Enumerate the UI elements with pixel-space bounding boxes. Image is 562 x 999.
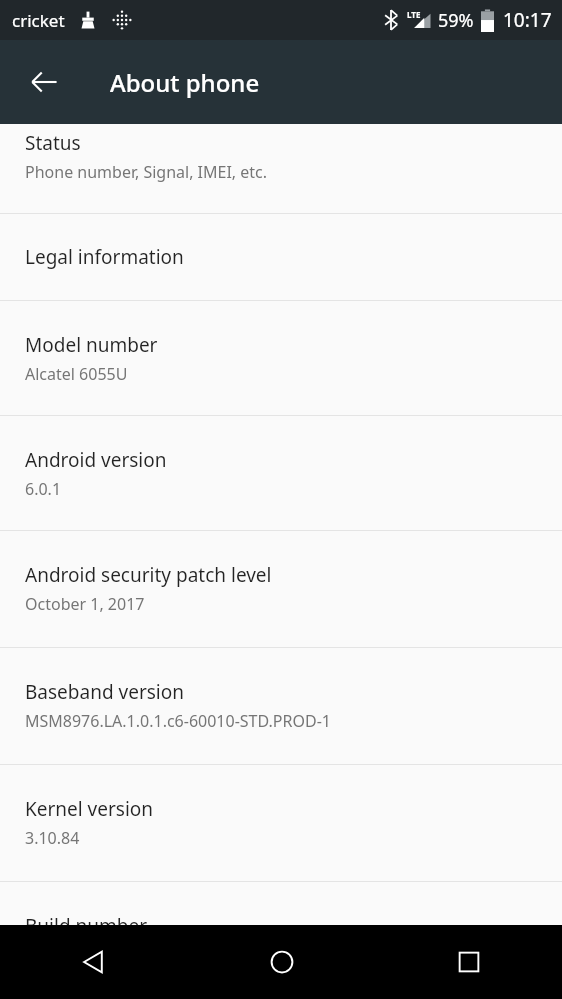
- button[interactable]: Home: [188, 925, 375, 999]
- button[interactable]: Kernel version: [0, 765, 562, 881]
- staticText: LTE: [407, 9, 421, 20]
- button[interactable]: Baseband version: [0, 648, 562, 764]
- button[interactable]: Recent apps: [375, 925, 562, 999]
- staticText: Android security patch level: [25, 562, 272, 588]
- staticText: 10:17: [503, 7, 552, 33]
- button[interactable]: Android security patch level: [0, 531, 562, 647]
- staticText: cricket: [12, 9, 65, 32]
- button[interactable]: Back: [0, 925, 188, 999]
- staticText: October 1, 2017: [25, 593, 145, 615]
- staticText: Android version: [25, 447, 167, 473]
- staticText: Status: [25, 130, 81, 156]
- button[interactable]: Build number: [0, 882, 562, 925]
- staticText: Legal information: [25, 244, 184, 270]
- staticText: Kernel version: [25, 796, 154, 822]
- button[interactable]: Navigate up: [22, 60, 66, 104]
- staticText: Alcatel 6055U: [25, 363, 128, 385]
- button[interactable]: Android version: [0, 416, 562, 530]
- staticText: 6.0.1: [25, 478, 62, 500]
- staticText: Baseband version: [25, 679, 184, 705]
- staticText: About phone: [110, 66, 260, 99]
- staticText: MSM8976.LA.1.0.1.c6-60010-STD.PROD-1: [25, 710, 331, 732]
- button[interactable]: Legal information: [0, 214, 562, 300]
- button[interactable]: Model number: [0, 301, 562, 415]
- staticText: Build number: [25, 913, 148, 925]
- button[interactable]: Status: [0, 124, 562, 213]
- staticText: Model number: [25, 332, 158, 358]
- staticText: 59%: [438, 8, 474, 33]
- staticText: 3.10.84: [25, 827, 80, 849]
- staticText: Phone number, Signal, IMEI, etc.: [25, 161, 268, 183]
